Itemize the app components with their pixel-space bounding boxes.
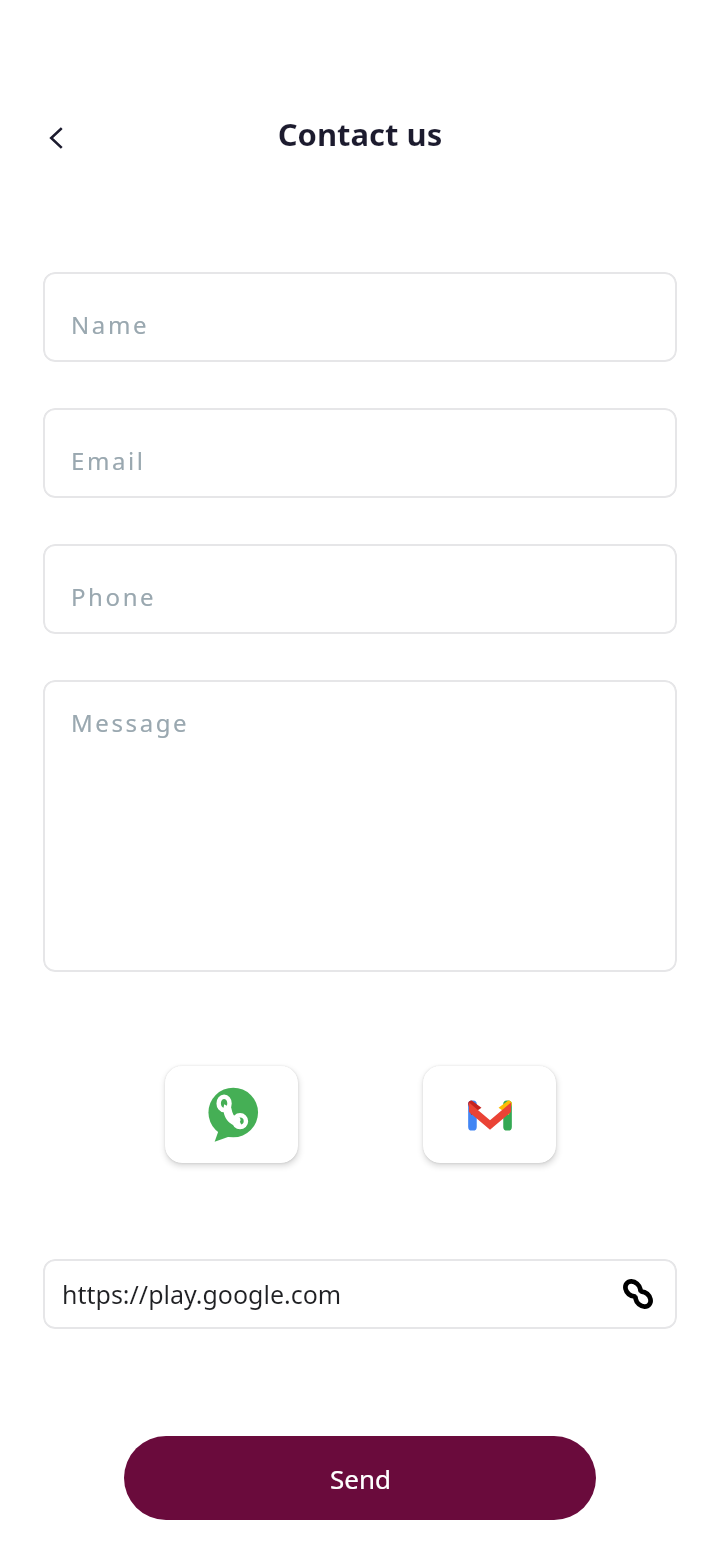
button[interactable]: Message bbox=[43, 680, 677, 972]
staticText: Email bbox=[71, 444, 146, 477]
staticText: Contact us bbox=[0, 113, 720, 155]
staticText: Phone bbox=[71, 580, 157, 613]
staticText: Message bbox=[71, 706, 190, 739]
staticText: Send bbox=[330, 1461, 391, 1496]
button[interactable]: Gmail bbox=[423, 1066, 556, 1163]
button[interactable]: Email bbox=[43, 408, 677, 498]
button[interactable]: https://play.google.com bbox=[43, 1259, 677, 1329]
button[interactable]: WhatsApp bbox=[165, 1066, 298, 1163]
staticText: https://play.google.com bbox=[62, 1277, 342, 1311]
button[interactable]: Name bbox=[43, 272, 677, 362]
button[interactable]: Phone bbox=[43, 544, 677, 634]
button[interactable]: Open link bbox=[615, 1271, 661, 1317]
staticText: Name bbox=[71, 308, 150, 341]
button[interactable]: Send bbox=[124, 1436, 596, 1520]
button[interactable]: Back bbox=[26, 108, 86, 168]
